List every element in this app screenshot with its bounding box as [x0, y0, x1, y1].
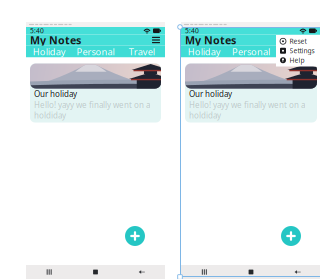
staticText: Hello! yayy we finally went on a holdida… — [34, 99, 150, 121]
button[interactable]: Personal — [72, 45, 119, 57]
button[interactable]: Personal — [228, 45, 274, 57]
staticText: Personal — [76, 45, 114, 57]
button[interactable]: Travel — [274, 45, 320, 57]
button[interactable]: Our holiday — [185, 63, 317, 122]
staticText: Holiday — [188, 45, 221, 57]
button[interactable]: Recents — [26, 265, 72, 279]
button[interactable]: Back — [274, 265, 320, 279]
staticText: 5:40 — [30, 26, 44, 35]
staticText: Holiday — [33, 45, 66, 57]
button[interactable]: Back — [119, 265, 165, 279]
staticText: Hello! yayy we finally went on a holdida… — [189, 99, 305, 121]
button[interactable]: Travel — [119, 45, 165, 57]
staticText: Help — [289, 56, 304, 65]
staticText: Personal — [232, 45, 270, 57]
button[interactable]: Recents — [181, 265, 228, 279]
staticText: Our holiday — [189, 89, 232, 99]
button[interactable]: Add note — [281, 226, 301, 246]
button[interactable]: Help — [276, 55, 320, 65]
staticText: My Notes — [30, 33, 81, 47]
button[interactable]: Holiday — [26, 45, 72, 57]
button[interactable]: Home — [72, 265, 119, 279]
button[interactable]: Reset — [276, 36, 320, 46]
button[interactable]: Add note — [125, 226, 145, 246]
button[interactable]: Menu — [150, 35, 162, 45]
button[interactable]: Home — [228, 265, 274, 279]
staticText: My Notes — [185, 33, 236, 47]
staticText: Travel — [285, 45, 311, 57]
staticText: 5:40 — [185, 26, 199, 35]
staticText: Reset — [289, 37, 306, 46]
staticText: Our holiday — [34, 89, 77, 99]
button[interactable]: Menu — [306, 35, 318, 45]
staticText: Travel — [129, 45, 155, 57]
button[interactable]: Holiday — [181, 45, 228, 57]
button[interactable]: Settings — [276, 46, 320, 55]
button[interactable]: Our holiday — [30, 63, 161, 122]
staticText: Settings — [289, 46, 314, 55]
